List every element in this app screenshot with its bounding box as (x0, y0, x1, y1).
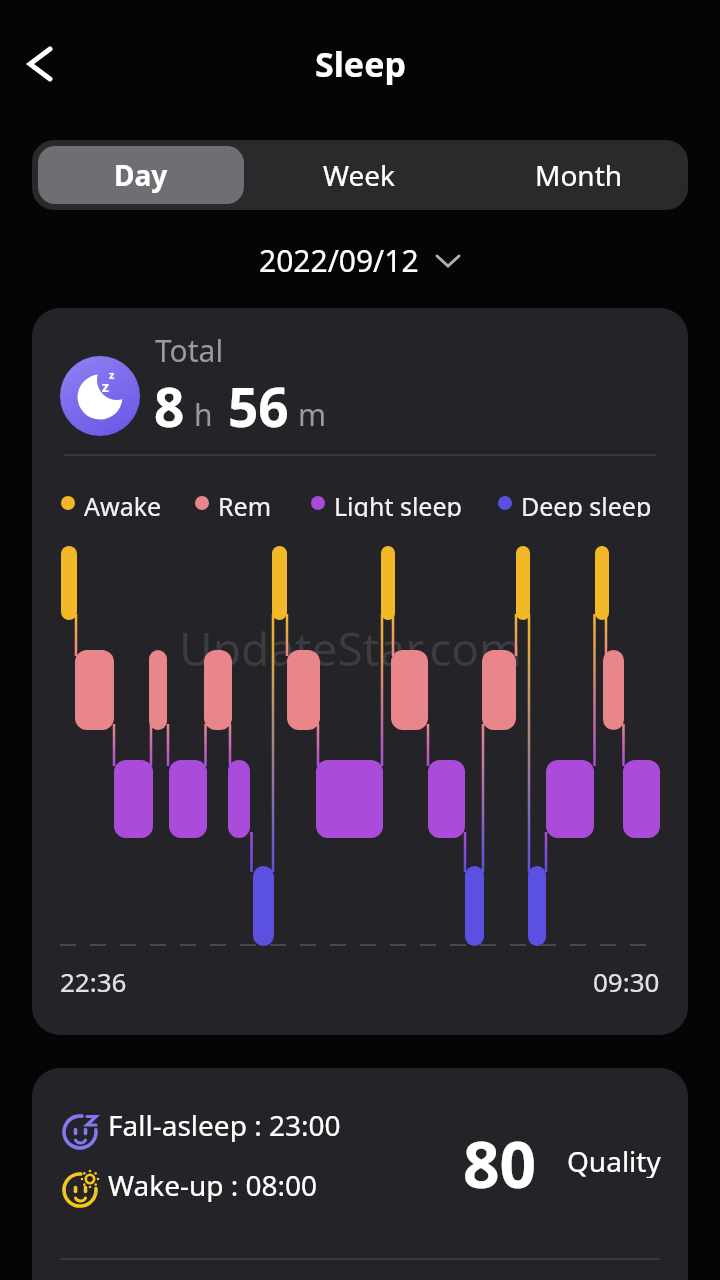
staticText: 80 (463, 1120, 537, 1196)
staticText: Day (114, 156, 168, 194)
staticText: UpdateStar.com (179, 617, 523, 680)
staticText: Week (323, 156, 396, 194)
staticText: 2022/09/12 (259, 240, 419, 281)
staticText: 09:30 (593, 964, 660, 996)
staticText: h (194, 394, 213, 435)
button[interactable]: 2022/09/12 (259, 240, 461, 281)
staticText: m (298, 394, 327, 435)
staticText: z (102, 377, 109, 396)
staticText: Total (155, 330, 224, 366)
staticText: Quality (567, 1142, 661, 1178)
staticText: 22:36 (60, 964, 127, 996)
staticText: Deep sleep (521, 489, 652, 517)
button[interactable]: Week (250, 140, 469, 210)
staticText: z (109, 367, 115, 382)
staticText: Month (535, 156, 623, 194)
staticText: Rem (218, 489, 272, 517)
staticText: 8 (154, 370, 185, 442)
staticText: Wake-up : 08:00 (108, 1166, 318, 1202)
staticText: Light sleep (334, 489, 462, 517)
button[interactable] (10, 38, 70, 90)
staticText: Fall-asleep : 23:00 (108, 1106, 341, 1142)
button[interactable]: Day (38, 146, 244, 204)
staticText: Awake (84, 489, 162, 517)
staticText: 56 (228, 370, 289, 442)
staticText: Sleep (315, 41, 406, 87)
button[interactable]: Month (469, 140, 688, 210)
